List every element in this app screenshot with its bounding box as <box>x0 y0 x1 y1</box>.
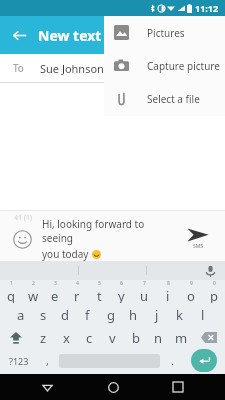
button[interactable]: , <box>37 349 57 372</box>
staticText: w <box>28 287 39 303</box>
button[interactable]: v <box>101 326 124 349</box>
staticText: m <box>175 329 188 347</box>
staticText: Sue Johnson <box>40 61 104 76</box>
staticText: n <box>154 329 163 347</box>
button[interactable]: Back <box>0 16 38 54</box>
staticText: c <box>86 329 93 347</box>
staticText: s <box>40 306 47 324</box>
staticText: 4 <box>76 280 79 287</box>
button[interactable]: k <box>168 303 191 326</box>
staticText: i <box>166 287 170 303</box>
button[interactable]: Back <box>29 374 65 400</box>
staticText: e <box>51 287 59 303</box>
staticText: x <box>63 329 70 347</box>
button[interactable]: ?123 <box>0 349 37 372</box>
button[interactable]: 9 <box>179 280 202 303</box>
button[interactable]: 5 <box>88 280 110 303</box>
staticText: a <box>17 306 25 324</box>
staticText: u <box>140 287 149 303</box>
button[interactable]: a <box>10 303 32 326</box>
staticText: f <box>85 306 90 324</box>
staticText: t <box>97 287 102 303</box>
staticText: 3 <box>54 280 57 287</box>
staticText: r <box>74 287 80 303</box>
staticText: 6 <box>120 280 123 287</box>
staticText: 2 <box>32 280 35 287</box>
button[interactable]: n <box>147 326 170 349</box>
button[interactable]: Send SMS <box>175 216 221 261</box>
staticText: Pictures <box>147 26 185 40</box>
staticText: Hi, looking forward to seeing <box>42 217 175 245</box>
button[interactable]: l <box>191 303 214 326</box>
staticText: y <box>118 287 125 303</box>
button[interactable]: To <box>0 54 225 82</box>
staticText: Select a file <box>147 92 200 106</box>
button[interactable]: d <box>54 303 76 326</box>
staticText: you today <box>42 247 92 261</box>
button[interactable]: j <box>145 303 168 326</box>
button[interactable]: z <box>32 326 55 349</box>
button[interactable]: 4 <box>66 280 88 303</box>
staticText: SMS <box>193 243 204 250</box>
staticText: 7 <box>143 280 146 287</box>
staticText: 0 <box>213 280 216 287</box>
staticText: p <box>210 287 218 303</box>
button[interactable]: Emoji <box>10 227 34 251</box>
button[interactable]: 2 <box>22 280 44 303</box>
button[interactable]: b <box>124 326 147 349</box>
button[interactable]: f <box>76 303 99 326</box>
staticText: o <box>187 287 195 303</box>
staticText: h <box>129 306 138 324</box>
button[interactable]: Home <box>95 374 131 400</box>
button[interactable]: Recents <box>160 374 196 400</box>
staticText: 8 <box>167 280 170 287</box>
staticText: 41 (1) <box>14 213 33 223</box>
staticText: To <box>13 61 24 75</box>
staticText: v <box>109 329 116 347</box>
button[interactable]: 7 <box>133 280 156 303</box>
staticText: 5 <box>98 280 101 287</box>
staticText: z <box>40 329 47 347</box>
staticText: Capture picture <box>147 59 220 73</box>
button[interactable]: h <box>122 303 145 326</box>
staticText: New text <box>38 26 102 45</box>
button[interactable]: . <box>162 349 182 372</box>
staticText: b <box>132 329 140 347</box>
staticText: 9 <box>190 280 193 287</box>
staticText: d <box>61 306 69 324</box>
button[interactable]: Capture picture <box>104 49 225 82</box>
button[interactable]: Select a file <box>104 82 225 115</box>
button[interactable]: s <box>32 303 54 326</box>
staticText: 1 <box>10 280 13 287</box>
staticText: q <box>7 287 15 303</box>
button[interactable]: c <box>78 326 101 349</box>
button[interactable]: m <box>170 326 193 349</box>
button[interactable]: 0 <box>202 280 225 303</box>
staticText: ?123 <box>9 355 29 367</box>
staticText: 11:12 <box>195 2 219 14</box>
button[interactable]: x <box>55 326 78 349</box>
staticText: g <box>107 306 115 324</box>
button[interactable]: Backspace <box>193 326 225 349</box>
button[interactable]: Enter <box>191 349 217 372</box>
staticText: k <box>176 306 183 324</box>
staticText: l <box>201 306 205 324</box>
button[interactable]: Pictures <box>104 16 225 49</box>
button[interactable] <box>147 261 225 280</box>
staticText: . <box>171 353 174 368</box>
staticText: , <box>46 353 49 368</box>
button[interactable]: 1 <box>0 280 22 303</box>
staticText: j <box>155 306 159 324</box>
button[interactable]: 6 <box>110 280 133 303</box>
button[interactable]: g <box>99 303 122 326</box>
button[interactable]: Shift <box>0 326 32 349</box>
button[interactable]: 3 <box>44 280 66 303</box>
button[interactable]: Voice input <box>203 264 217 278</box>
button[interactable]: 8 <box>156 280 179 303</box>
